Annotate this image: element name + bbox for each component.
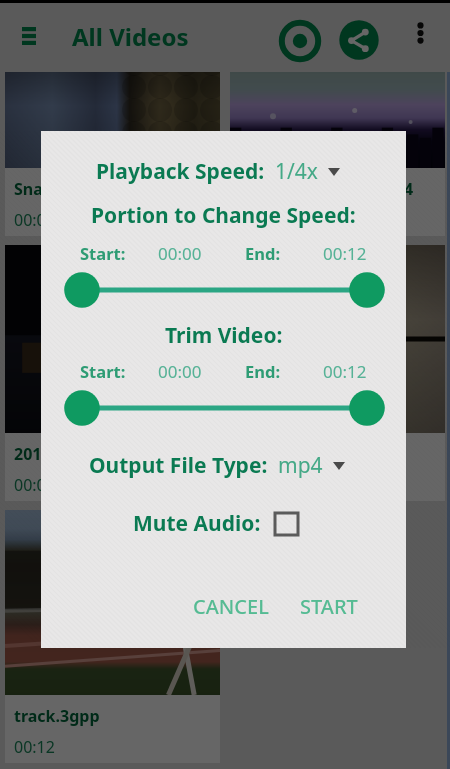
- button[interactable]: Record: [276, 17, 324, 65]
- button[interactable]: 20190310_203100.mp4: [230, 72, 445, 236]
- staticText: Playback Speed:: [96, 157, 265, 186]
- staticText: Output File Type:: [89, 451, 268, 480]
- staticText: START: [300, 593, 358, 620]
- staticText: 20190216_1250..: [239, 443, 365, 465]
- button[interactable]: 20190301_2012..: [5, 245, 220, 501]
- staticText: All Videos: [72, 20, 189, 53]
- staticText: 00:07: [239, 209, 280, 231]
- button[interactable]: Range slider: [41, 270, 406, 310]
- staticText: Snapchat-1724..: [14, 178, 139, 200]
- button[interactable]: Menu: [8, 15, 50, 57]
- button[interactable]: More options: [404, 17, 436, 49]
- staticText: 1/4x: [275, 157, 318, 186]
- staticText: Start:: [80, 242, 126, 264]
- button[interactable]: Snapchat-1724..: [5, 72, 220, 236]
- staticText: Mute Audio:: [133, 509, 261, 538]
- staticText: 00:00: [158, 360, 202, 383]
- button[interactable]: 20190216_1250..: [230, 245, 445, 501]
- staticText: CANCEL: [193, 593, 269, 620]
- button[interactable]: Share: [336, 17, 382, 63]
- staticText: 00:09: [239, 474, 280, 496]
- button[interactable]: START: [289, 585, 369, 628]
- staticText: 00:05: [14, 474, 55, 496]
- staticText: Trim Video:: [165, 321, 283, 350]
- staticText: End:: [245, 242, 281, 264]
- staticText: 00:00: [14, 209, 55, 231]
- staticText: 00:12: [14, 736, 55, 758]
- staticText: mp4: [278, 451, 323, 480]
- button[interactable]: Range slider: [41, 388, 406, 428]
- staticText: Start:: [80, 360, 126, 382]
- button[interactable]: CANCEL: [182, 585, 280, 628]
- staticText: 20190310_203100.mp4: [239, 178, 414, 200]
- staticText: 00:12: [323, 360, 367, 383]
- button[interactable]: Mute Audio checkbox: [274, 512, 298, 536]
- staticText: End:: [245, 360, 281, 382]
- staticText: 20190301_2012..: [14, 443, 140, 465]
- staticText: 00:12: [323, 242, 367, 265]
- staticText: 00:00: [158, 242, 202, 265]
- staticText: track.3gpp: [14, 705, 100, 727]
- staticText: Portion to Change Speed:: [91, 201, 356, 230]
- button[interactable]: track.3gpp: [5, 510, 220, 763]
